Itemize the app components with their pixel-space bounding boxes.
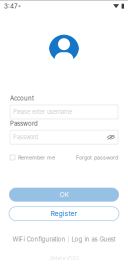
button[interactable]: WiFi Configuration: [12, 236, 65, 243]
staticText: Zetara V1.0.1: [49, 255, 78, 261]
staticText: Register: [50, 210, 77, 218]
button[interactable]: Remember me: [10, 154, 55, 161]
staticText: Please enter username: [13, 109, 72, 115]
staticText: Remember me: [18, 154, 55, 161]
staticText: |: [67, 236, 69, 243]
button[interactable]: Forgot password: [76, 154, 118, 161]
button[interactable]: Log in as Guest: [71, 236, 115, 243]
staticText: Forgot password: [76, 154, 118, 161]
staticText: OK: [59, 191, 68, 199]
button[interactable]: Show password: [107, 134, 115, 140]
button[interactable]: Register: [9, 207, 119, 221]
staticText: 3:47: [4, 2, 17, 10]
staticText: WiFi Configuration: [12, 236, 65, 243]
staticText: Log in as Guest: [71, 236, 115, 243]
button[interactable]: OK: [9, 188, 119, 202]
staticText: Password: [10, 120, 38, 127]
staticText: Password: [13, 134, 38, 141]
staticText: Account: [10, 95, 34, 102]
